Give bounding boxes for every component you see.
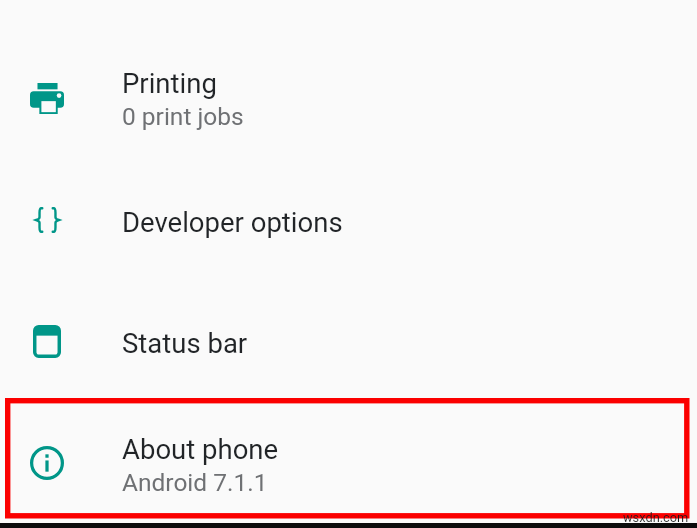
- staticText: Developer options: [122, 206, 343, 238]
- staticText: Android 7.1.1: [122, 468, 268, 497]
- staticText: About phone: [122, 433, 279, 465]
- button[interactable]: Status bar: [0, 281, 697, 403]
- other: About phone: [30, 446, 64, 480]
- other: Printing: [30, 83, 64, 114]
- other: Developer options: [33, 207, 62, 233]
- button[interactable]: Printing: [0, 37, 697, 159]
- staticText: Status bar: [122, 327, 248, 359]
- button[interactable]: About phone: [0, 403, 697, 523]
- staticText: Printing: [122, 67, 217, 99]
- staticText: 0 print jobs: [122, 102, 244, 131]
- other: Status bar: [33, 325, 61, 358]
- button[interactable]: Developer options: [0, 159, 697, 281]
- staticText: wsxdn.com: [623, 510, 689, 525]
